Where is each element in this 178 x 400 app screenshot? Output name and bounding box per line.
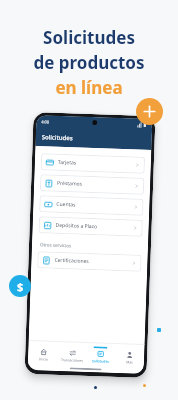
staticText: Solicitudes [43, 26, 135, 49]
staticText: Depósitos a Plazo [55, 222, 98, 230]
staticText: Inicio [39, 356, 48, 361]
button[interactable]: Pagos [9, 275, 31, 297]
staticText: Solicitudes [42, 133, 73, 142]
button[interactable]: Préstamos [40, 174, 144, 195]
button[interactable]: Certificaciones [37, 251, 142, 272]
staticText: Cuentas [56, 201, 76, 208]
staticText: Préstamos [57, 180, 82, 188]
staticText: Transacciones [61, 357, 83, 362]
button[interactable]: Cuentas [39, 195, 144, 216]
button[interactable]: Inicio [29, 343, 57, 362]
staticText: Certificaciones [54, 257, 89, 265]
button[interactable]: Tarjetas [41, 153, 145, 174]
staticText: en línea [55, 76, 123, 99]
staticText: Más [126, 359, 133, 363]
staticText: Otros servicios [40, 241, 72, 248]
button[interactable]: Más [115, 346, 143, 365]
button[interactable]: Transacciones [58, 344, 86, 363]
staticText: 4:08 [41, 119, 49, 124]
staticText: Tarjetas [58, 159, 77, 166]
button[interactable]: Depósitos a Plazo [38, 216, 143, 237]
button[interactable]: Nueva solicitud [136, 98, 163, 125]
staticText: $ [17, 279, 24, 294]
staticText: Solicitudes [92, 358, 109, 363]
staticText: de productos [33, 51, 145, 74]
button[interactable]: Solicitudes [86, 345, 114, 364]
